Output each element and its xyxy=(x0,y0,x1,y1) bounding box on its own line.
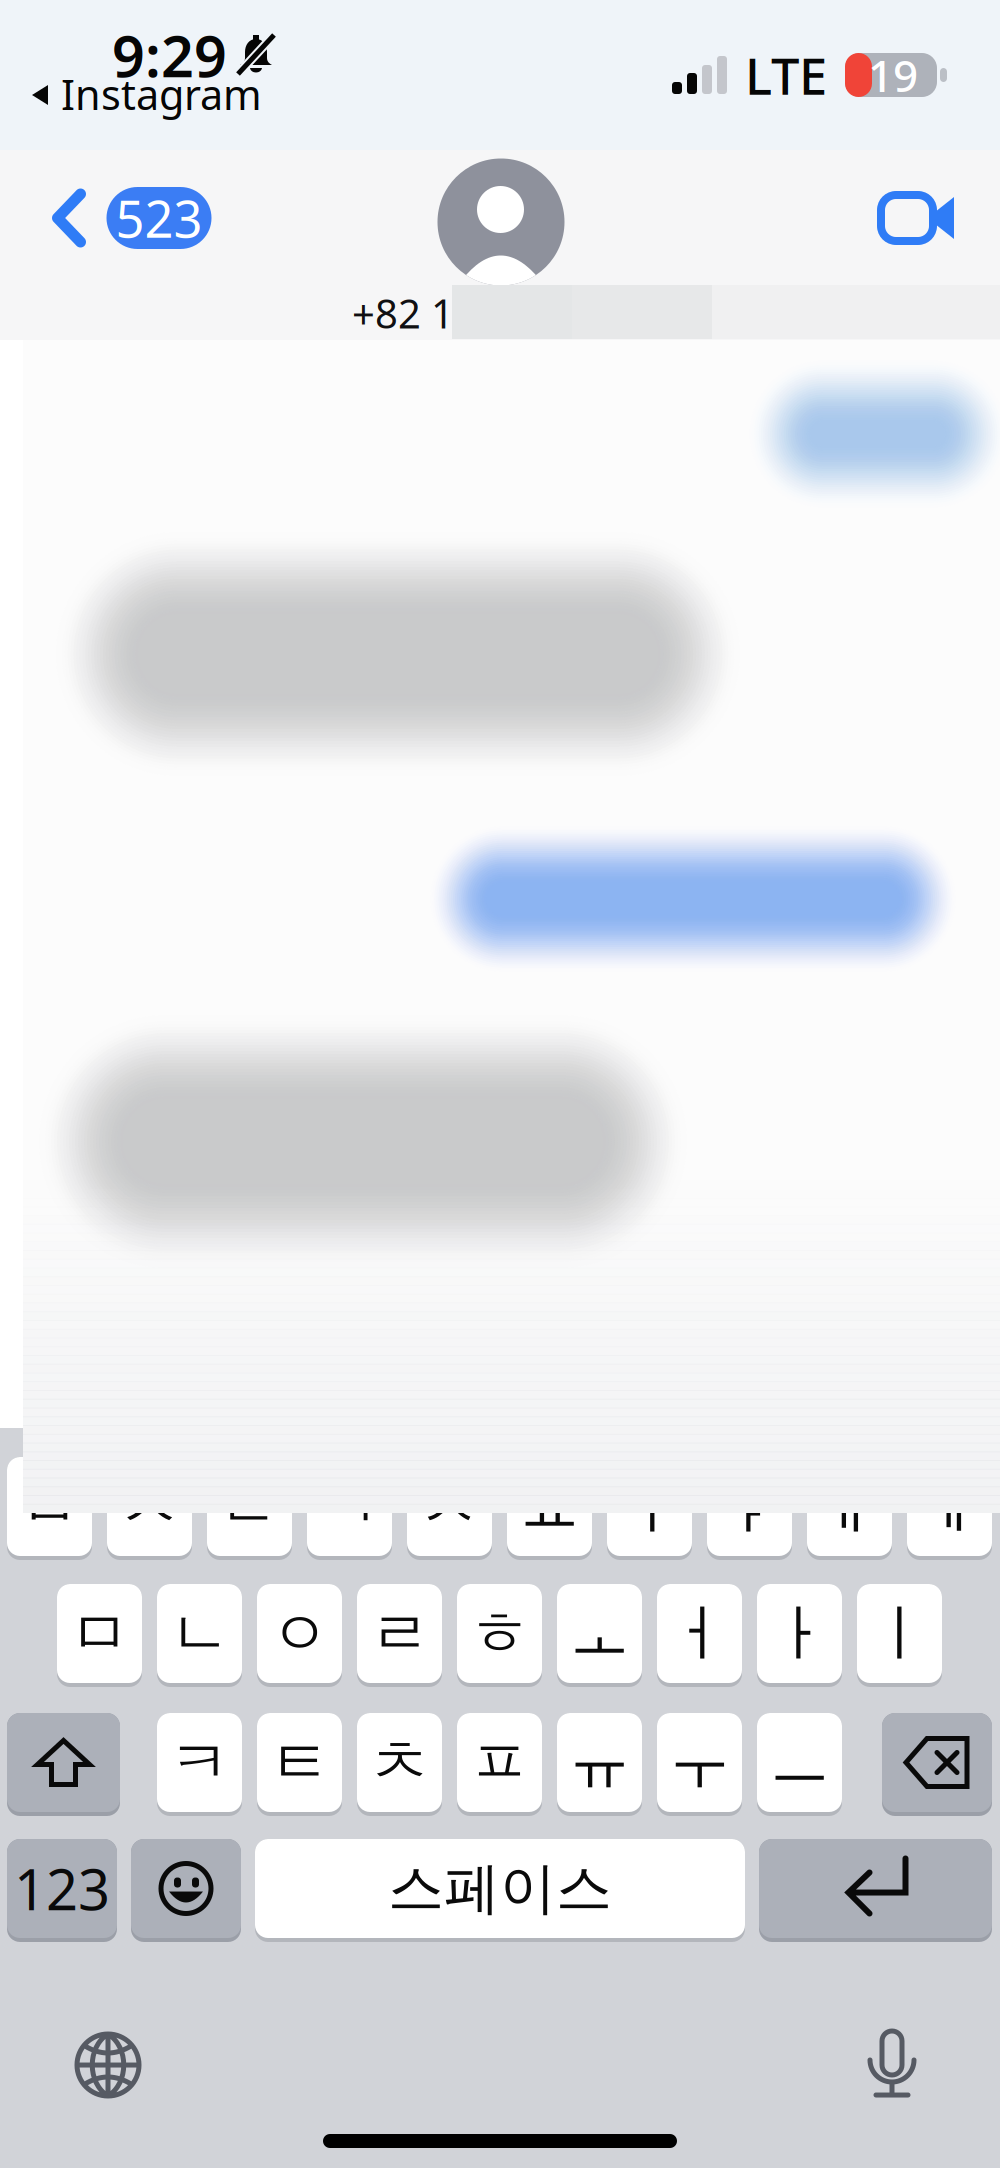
staticText: ㅂ xyxy=(19,1469,80,1544)
staticText: LTE xyxy=(745,41,827,109)
staticText: ㅜ xyxy=(669,1725,730,1800)
button[interactable]: ㄱ xyxy=(307,1457,392,1560)
button[interactable]: ㄷ xyxy=(207,1457,292,1560)
button[interactable]: ㅂ xyxy=(7,1457,92,1560)
staticText: +82 10 xyxy=(352,286,477,339)
button[interactable]: ㅡ xyxy=(757,1713,842,1816)
staticText: ㅏ xyxy=(769,1596,830,1671)
staticText: 523 xyxy=(115,184,202,252)
button[interactable]: ㄴ xyxy=(157,1584,242,1687)
staticText: ㄴ xyxy=(169,1596,230,1671)
button[interactable]: ㅁ xyxy=(57,1584,142,1687)
button[interactable]: ㅏ xyxy=(757,1584,842,1687)
staticText: ㅌ xyxy=(269,1725,330,1800)
button[interactable]: ㅑ xyxy=(707,1457,792,1560)
button[interactable]: Next keyboard xyxy=(50,2007,166,2123)
staticText: ㅓ xyxy=(669,1596,730,1671)
staticText: ㅑ xyxy=(719,1469,780,1544)
staticText: ㄷ xyxy=(219,1469,280,1544)
button[interactable] xyxy=(131,1839,241,1942)
staticText: ㄱ xyxy=(319,1469,380,1544)
button[interactable]: ㅋ xyxy=(157,1713,242,1816)
button[interactable]: ㅗ xyxy=(557,1584,642,1687)
button[interactable]: 스페이스 xyxy=(255,1839,745,1942)
staticText: 123 xyxy=(14,1851,110,1926)
button[interactable]: ㄹ xyxy=(357,1584,442,1687)
staticText: 19 xyxy=(868,46,918,104)
staticText: ㅡ xyxy=(769,1725,830,1800)
button[interactable]: ㅊ xyxy=(357,1713,442,1816)
button[interactable]: ㅣ xyxy=(857,1584,942,1687)
staticText: ㅐ xyxy=(819,1469,880,1544)
button[interactable]: ㅓ xyxy=(657,1584,742,1687)
button[interactable] xyxy=(759,1839,992,1942)
staticText: ㅗ xyxy=(569,1596,630,1671)
staticText: ㅋ xyxy=(169,1725,230,1800)
staticText: ㅊ xyxy=(369,1725,430,1800)
button[interactable]: FaceTime xyxy=(854,163,986,273)
button[interactable]: ㅠ xyxy=(557,1713,642,1816)
staticText: ㅁ xyxy=(69,1596,130,1671)
button[interactable]: ㅌ xyxy=(257,1713,342,1816)
button[interactable]: ㅎ xyxy=(457,1584,542,1687)
staticText: ㅔ xyxy=(919,1469,980,1544)
button[interactable]: 123 xyxy=(7,1839,117,1942)
staticText: ㅍ xyxy=(469,1725,530,1800)
button[interactable]: ㅔ xyxy=(907,1457,992,1560)
button[interactable]: ㅍ xyxy=(457,1713,542,1816)
staticText: 9:29 xyxy=(112,17,227,93)
staticText: ㅕ xyxy=(619,1469,680,1544)
button[interactable] xyxy=(7,1713,120,1816)
staticText: ㅠ xyxy=(569,1725,630,1800)
staticText: Instagram xyxy=(61,67,262,121)
button[interactable]: ㅐ xyxy=(807,1457,892,1560)
button[interactable] xyxy=(882,1713,992,1816)
button[interactable]: Dictation xyxy=(840,2000,944,2126)
button[interactable]: ㅜ xyxy=(657,1713,742,1816)
staticText: ㅇ xyxy=(269,1596,330,1671)
staticText: ㄹ xyxy=(369,1596,430,1671)
button[interactable]: ㅕ xyxy=(607,1457,692,1560)
button[interactable]: ㅈ xyxy=(107,1457,192,1560)
staticText: ㅛ xyxy=(519,1469,580,1544)
staticText: 스페이스 xyxy=(388,1854,612,1923)
button[interactable]: ㅇ xyxy=(257,1584,342,1687)
staticText: ㅈ xyxy=(119,1469,180,1544)
button[interactable]: ㅅ xyxy=(407,1457,492,1560)
staticText: ㅅ xyxy=(419,1469,480,1544)
staticText: ㅎ xyxy=(469,1596,530,1671)
staticText: ㅣ xyxy=(869,1596,930,1671)
button[interactable]: 523 xyxy=(26,165,235,271)
button[interactable]: ㅛ xyxy=(507,1457,592,1560)
